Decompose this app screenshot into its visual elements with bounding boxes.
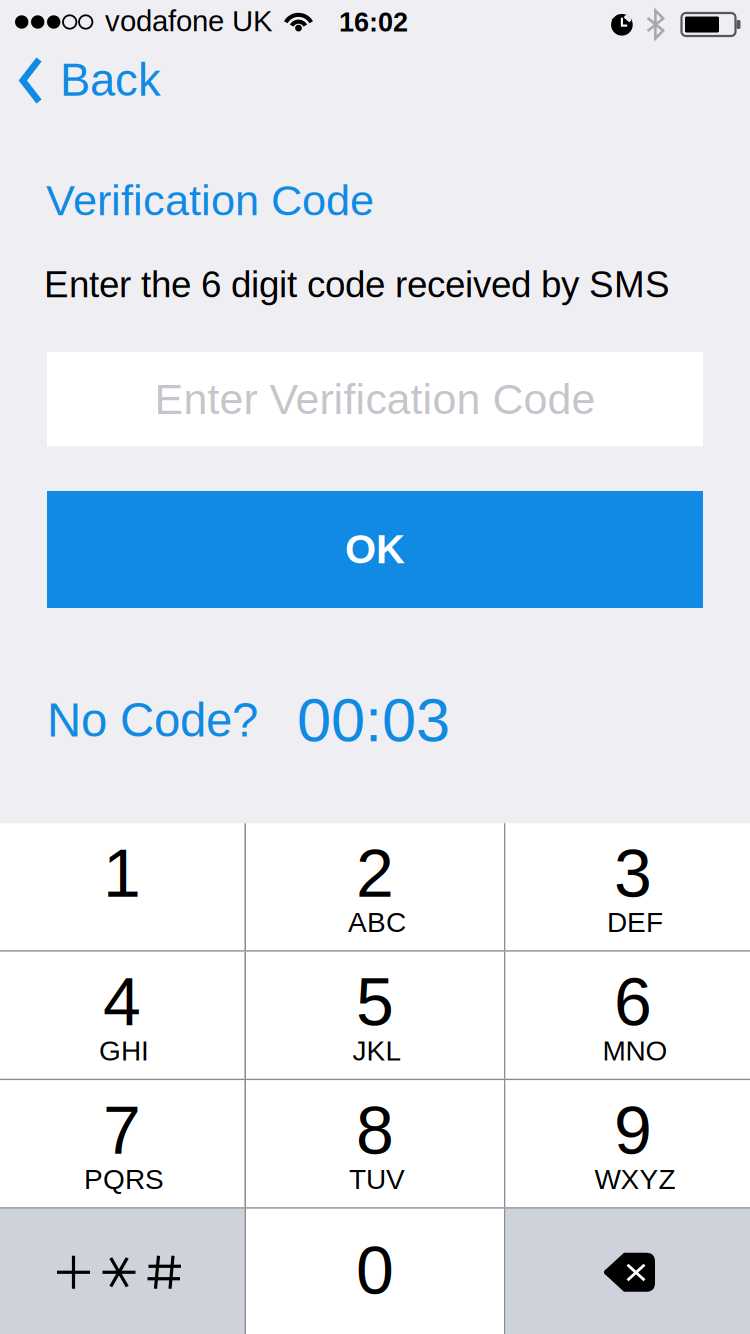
button[interactable]: Plus star hash — [0, 1209, 244, 1334]
staticText: 16:02 — [339, 7, 408, 37]
staticText: 00:03 — [297, 686, 450, 754]
staticText: vodafone UK — [105, 5, 273, 37]
staticText: 3 — [614, 835, 652, 911]
staticText: 0 — [356, 1232, 394, 1308]
button[interactable]: 1 — [0, 823, 244, 950]
button[interactable]: 0 — [246, 1209, 504, 1334]
button[interactable]: OK — [47, 491, 703, 608]
staticText: 7 — [103, 1092, 141, 1168]
staticText: JKL — [352, 1035, 401, 1066]
staticText: Enter the 6 digit code received by SMS — [44, 264, 670, 305]
staticText: Verification Code — [46, 176, 374, 224]
button[interactable]: 5 — [246, 952, 504, 1079]
staticText: No Code? — [47, 694, 258, 746]
button[interactable]: 8 — [246, 1080, 504, 1207]
staticText: 1 — [103, 835, 141, 911]
button[interactable]: 4 — [0, 952, 244, 1079]
staticText: GHI — [99, 1035, 149, 1066]
button[interactable]: 9 — [505, 1080, 750, 1207]
staticText: PQRS — [84, 1164, 164, 1195]
staticText: MNO — [602, 1035, 667, 1066]
staticText: 5 — [356, 964, 394, 1040]
staticText: TUV — [349, 1164, 405, 1195]
button[interactable]: 7 — [0, 1080, 244, 1207]
button[interactable]: 3 — [505, 823, 750, 950]
button[interactable]: No Code? — [47, 692, 467, 748]
staticText: DEF — [607, 907, 663, 938]
button[interactable]: 6 — [505, 952, 750, 1079]
staticText: 9 — [614, 1092, 652, 1168]
staticText: Enter Verification Code — [154, 375, 595, 423]
staticText: 6 — [614, 964, 652, 1040]
staticText: 4 — [103, 964, 141, 1040]
button[interactable]: Back — [0, 52, 230, 124]
staticText: WXYZ — [594, 1164, 675, 1195]
staticText: OK — [345, 527, 405, 572]
staticText: Back — [60, 55, 161, 105]
button[interactable]: 2 — [246, 823, 504, 950]
button[interactable]: Delete — [505, 1209, 750, 1334]
staticText: 2 — [356, 835, 394, 911]
staticText: ABC — [348, 907, 406, 938]
staticText: 8 — [356, 1092, 394, 1168]
